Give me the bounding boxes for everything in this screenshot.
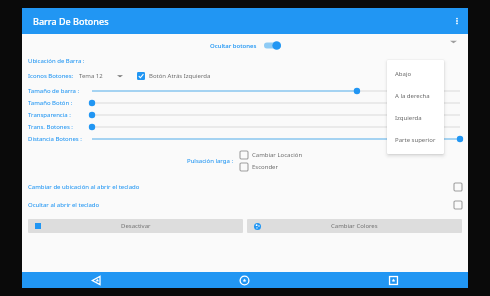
button[interactable]: Home xyxy=(170,272,319,288)
button[interactable]: Tamaño de barra : xyxy=(28,85,462,97)
staticText: Tamaño de barra : xyxy=(28,87,90,95)
staticText: Transparencia : xyxy=(28,111,90,119)
button[interactable]: Checked xyxy=(137,72,145,80)
staticText: Desactivar xyxy=(121,222,151,230)
button[interactable]: Trans. Botones : xyxy=(28,121,462,133)
button[interactable]: Tema 12 xyxy=(79,72,123,80)
staticText: Parte superior xyxy=(395,136,436,144)
button[interactable]: A la derecha xyxy=(387,85,444,107)
staticText: Ocultar al abrir el teclado xyxy=(28,201,100,209)
button[interactable]: Cambiar Colores xyxy=(247,219,462,233)
staticText: Izquierda xyxy=(395,114,422,122)
staticText: Cambiar Locación xyxy=(252,151,303,159)
staticText: Tamaño Botón : xyxy=(28,99,90,107)
button[interactable]: Unchecked xyxy=(240,151,248,159)
button[interactable]: Unchecked xyxy=(454,201,462,209)
staticText: Iconos Botones: xyxy=(28,72,74,80)
staticText: Botón Atrás Izquierda xyxy=(149,72,211,80)
staticText: Tema 12 xyxy=(79,72,103,80)
staticText: Cambiar de ubicación al abrir el teclado xyxy=(28,183,140,191)
button[interactable]: Ocultar al abrir el teclado xyxy=(22,198,468,212)
button[interactable]: Desactivar xyxy=(28,219,243,233)
button[interactable]: Ocultar botones xyxy=(22,41,468,50)
staticText: Barra De Botones xyxy=(33,15,109,27)
button[interactable]: Unchecked xyxy=(240,163,278,171)
button[interactable]: Tamaño Botón : xyxy=(28,97,462,109)
staticText: Distancia Botones : xyxy=(28,135,90,143)
staticText: Trans. Botones : xyxy=(28,123,90,131)
staticText: Abajo xyxy=(395,70,412,78)
button[interactable]: Izquierda xyxy=(387,107,444,129)
button[interactable]: Transparencia : xyxy=(28,109,462,121)
button[interactable]: More options xyxy=(446,10,468,32)
staticText: A la derecha xyxy=(395,92,430,100)
staticText: Esconder xyxy=(252,163,278,171)
button[interactable]: Unchecked xyxy=(240,151,303,159)
button[interactable]: Checked xyxy=(137,72,211,80)
button[interactable]: Parte superior xyxy=(387,129,444,151)
button[interactable]: Unchecked xyxy=(240,163,248,171)
button[interactable]: Unchecked xyxy=(454,183,462,191)
button[interactable]: Recent apps xyxy=(319,272,468,288)
staticText: Ubicación de Barra : xyxy=(28,57,85,65)
button[interactable]: Back xyxy=(22,272,170,288)
staticText: Pulsación larga : xyxy=(187,157,234,165)
button[interactable]: Cambiar de ubicación al abrir el teclado xyxy=(22,180,468,194)
button[interactable]: Abajo xyxy=(387,63,444,85)
staticText: Cambiar Colores xyxy=(331,222,378,230)
staticText: Ocultar botones xyxy=(210,42,257,50)
button[interactable]: Distancia Botones : xyxy=(28,133,462,145)
